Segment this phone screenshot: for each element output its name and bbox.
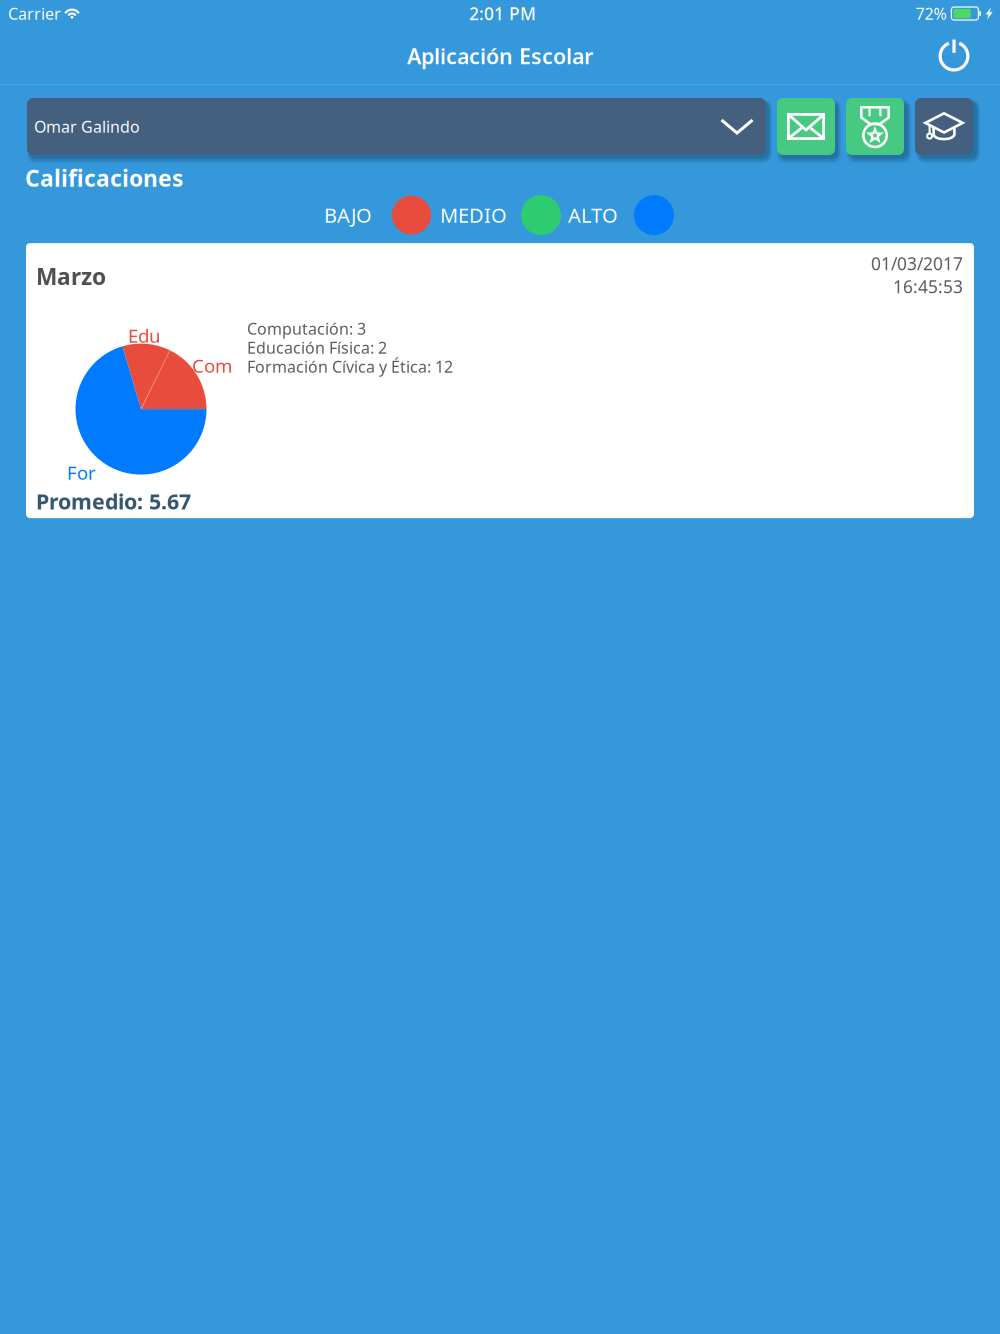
staticText: BAJO [324, 202, 372, 228]
staticText: 72% [915, 3, 946, 24]
button[interactable]: Mensajes [777, 98, 835, 155]
button[interactable]: Calificaciones [915, 98, 973, 155]
staticText: Omar Galindo [34, 116, 140, 137]
staticText: 01/03/2017 [871, 252, 963, 275]
button[interactable]: Reconocimientos [846, 98, 904, 155]
staticText: MEDIO [440, 202, 507, 228]
staticText: Edu [128, 323, 161, 348]
staticText: Aplicación Escolar [407, 42, 593, 70]
staticText: 16:45:53 [893, 275, 963, 298]
staticText: Marzo [36, 261, 106, 291]
staticText: ALTO [568, 202, 618, 228]
button[interactable]: Omar Galindo [27, 98, 766, 155]
staticText: Carrier [8, 3, 61, 24]
staticText: For [67, 460, 96, 485]
staticText: Calificaciones [25, 163, 183, 193]
staticText: Formación Cívica y Ética: 12 [247, 356, 453, 377]
staticText: 2:01 PM [469, 2, 536, 25]
button[interactable]: Cerrar sesión [930, 30, 978, 82]
staticText: Educación Física: 2 [247, 337, 387, 358]
staticText: Promedio: 5.67 [36, 487, 191, 515]
staticText: Com [192, 353, 232, 378]
staticText: Computación: 3 [247, 318, 366, 339]
